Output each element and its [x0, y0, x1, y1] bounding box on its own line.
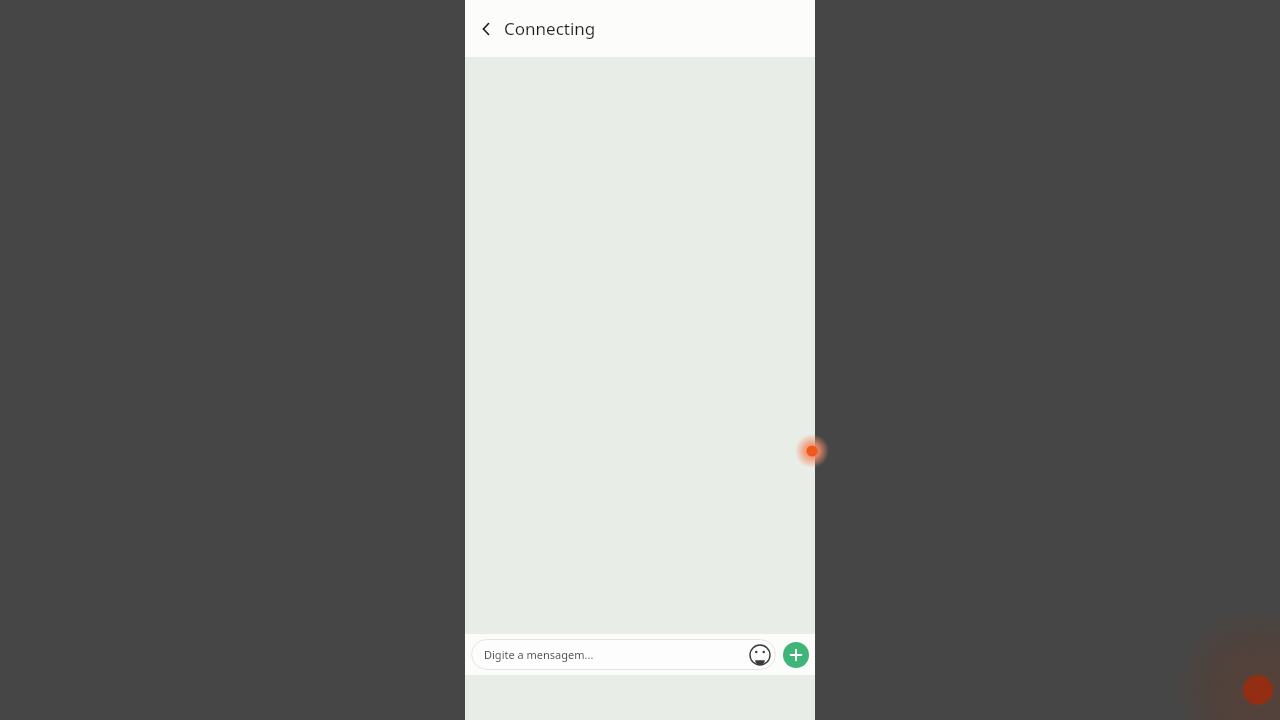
button[interactable]: Add attachment [783, 642, 809, 668]
button[interactable]: Back [475, 0, 606, 57]
button[interactable]: Emoji [748, 643, 772, 667]
other: Back [475, 18, 497, 40]
button[interactable]: Digite a mensagem... [471, 639, 776, 670]
staticText: Digite a mensagem... [484, 647, 748, 662]
staticText: Connecting [504, 17, 596, 40]
